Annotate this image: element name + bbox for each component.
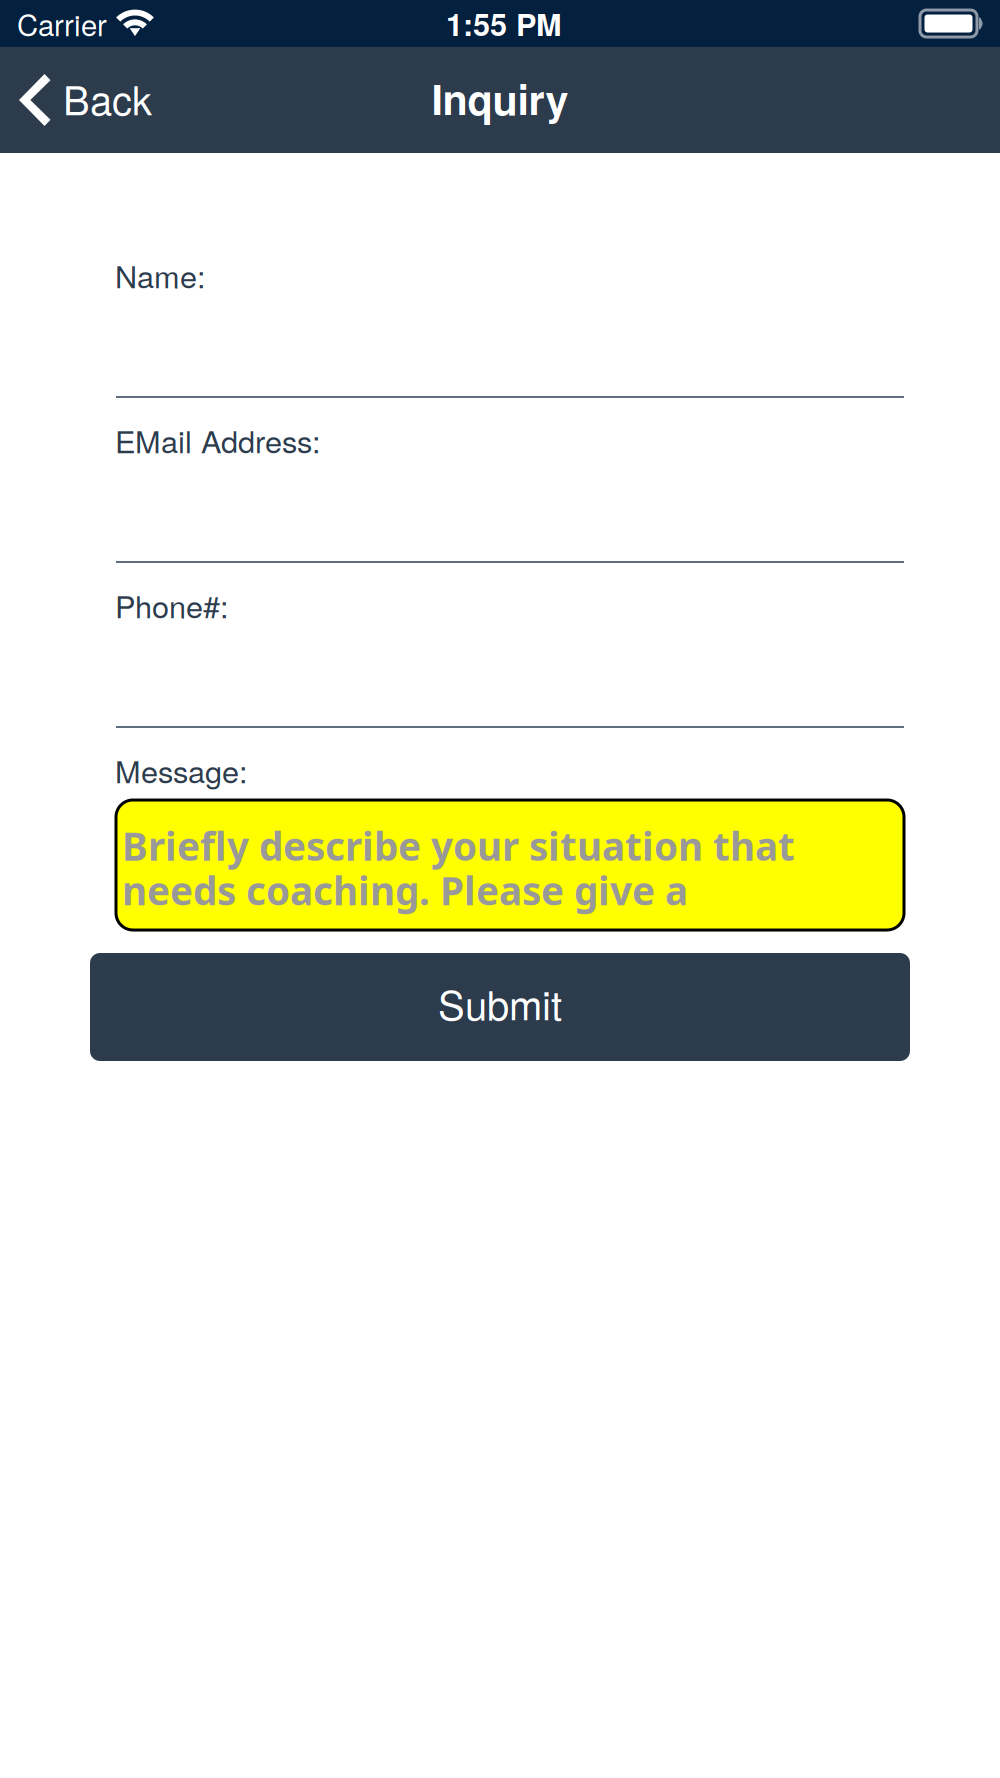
staticText: Briefly describe your situation that xyxy=(122,819,795,872)
button[interactable]: Back xyxy=(0,47,168,153)
staticText: Message: xyxy=(115,748,248,792)
staticText: Carrier xyxy=(17,2,107,44)
staticText: Submit xyxy=(438,974,562,1032)
staticText: 1:55 PM xyxy=(446,1,562,45)
staticText: EMail Address: xyxy=(115,418,321,462)
staticText: Name: xyxy=(115,253,206,297)
staticText: needs coaching. Please give a xyxy=(122,864,688,917)
staticText: Inquiry xyxy=(431,68,568,128)
staticText: Back xyxy=(63,69,152,127)
button[interactable]: Submit xyxy=(90,953,910,1061)
staticText: Phone#: xyxy=(115,583,229,627)
